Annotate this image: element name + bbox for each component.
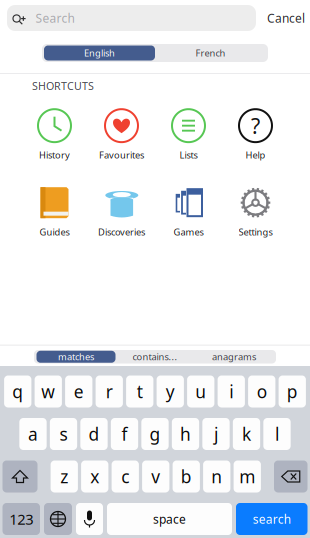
button[interactable]: Lists [155,106,222,164]
button[interactable]: a [19,418,47,450]
button[interactable]: Next keyboard [44,503,72,535]
staticText: q [12,380,23,403]
button[interactable]: j [202,418,230,450]
button[interactable]: History [21,106,88,164]
staticText: r [106,380,113,403]
staticText: x [90,465,99,488]
staticText: g [149,422,160,445]
staticText: Games [173,226,203,238]
button[interactable]: English [44,45,155,60]
button[interactable]: q [4,375,31,407]
staticText: v [151,465,160,488]
staticText: English [84,47,115,59]
button[interactable]: Favourites [88,106,155,164]
button[interactable]: r [96,375,123,407]
button[interactable]: y [157,375,184,407]
button[interactable]: space [107,503,232,535]
staticText: Favourites [99,149,144,161]
staticText: j [214,422,218,445]
button[interactable]: w [35,375,62,407]
button[interactable]: m [234,460,261,492]
staticText: d [88,422,99,445]
button[interactable]: anagrams [194,351,273,363]
staticText: i [229,380,233,403]
staticText: y [166,380,175,403]
staticText: o [257,380,267,403]
button[interactable]: i [218,375,245,407]
staticText: t [137,380,143,403]
staticText: z [60,465,68,488]
staticText: l [275,422,279,445]
button[interactable]: Guides [21,183,88,241]
button[interactable]: b [173,460,200,492]
button[interactable]: Shift [2,460,37,492]
staticText: space [153,511,186,527]
button[interactable]: v [142,460,169,492]
staticText: Help [245,149,265,161]
staticText: p [287,380,298,403]
staticText: f [121,422,127,445]
staticText: anagrams [212,351,256,363]
staticText: ? [251,111,260,140]
button[interactable]: ? [222,106,289,164]
button[interactable]: French [155,45,266,60]
staticText: Discoveries [98,226,145,238]
button[interactable]: h [172,418,199,450]
staticText: m [239,465,255,488]
staticText: b [181,465,192,488]
staticText: Cancel [267,10,305,26]
staticText: French [195,47,225,59]
staticText: w [41,380,55,403]
button[interactable]: s [50,418,77,450]
button[interactable]: f [111,418,138,450]
staticText: a [28,422,38,445]
button[interactable]: Settings [222,183,289,241]
button[interactable]: d [80,418,108,450]
button[interactable]: matches [36,351,115,363]
staticText: s [59,422,67,445]
button[interactable]: c [112,460,139,492]
staticText: u [195,380,206,403]
button[interactable]: Games [155,183,222,241]
button[interactable]: Dictation [76,503,103,535]
button[interactable]: e [65,375,92,407]
button[interactable]: z [51,460,78,492]
button[interactable]: p [279,375,306,407]
button[interactable]: Cancel [267,5,305,31]
staticText: c [121,465,129,488]
staticText: Search [35,10,74,26]
staticText: h [180,422,191,445]
staticText: e [74,380,84,403]
staticText: contains... [132,351,177,363]
button[interactable]: l [263,418,291,450]
staticText: matches [58,351,94,363]
staticText: k [242,422,251,445]
button[interactable]: n [203,460,230,492]
staticText: Settings [238,226,272,238]
button[interactable]: g [141,418,169,450]
button[interactable]: search [236,503,307,535]
button[interactable]: 123 [2,503,40,535]
staticText: History [39,149,70,161]
staticText: 123 [9,509,33,529]
button[interactable]: Discoveries [88,183,155,241]
button[interactable]: x [81,460,108,492]
staticText: SHORTCUTS [32,79,94,93]
button[interactable]: Delete [274,460,307,492]
button[interactable]: o [248,375,275,407]
staticText: n [211,465,222,488]
button[interactable]: contains... [115,351,194,363]
button[interactable]: k [233,418,260,450]
staticText: Guides [39,226,69,238]
staticText: Lists [179,149,197,161]
staticText: search [253,511,291,527]
button[interactable]: u [187,375,214,407]
button[interactable]: t [126,375,153,407]
